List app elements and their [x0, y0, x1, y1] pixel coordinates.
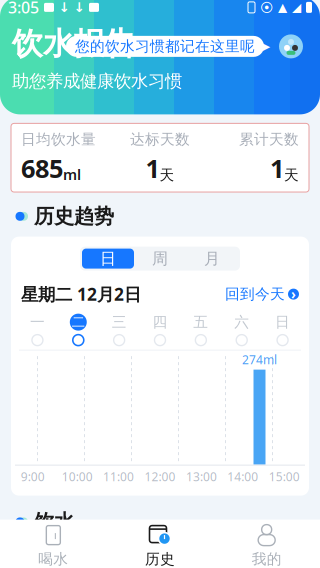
staticText: 三 [112, 313, 127, 331]
staticText: 9:00 [21, 469, 45, 484]
staticText: 六 [234, 313, 249, 331]
staticText: 历史趋势 [34, 204, 114, 229]
staticText: 达标天数 [130, 130, 190, 148]
staticText: 一 [30, 313, 45, 331]
staticText: 五 [193, 313, 208, 331]
staticText: 1 [145, 151, 159, 185]
staticText: 喝水 [38, 550, 68, 568]
staticText: 11:00 [103, 469, 134, 484]
staticText: 12:00 [144, 469, 175, 484]
button[interactable]: 月 [186, 249, 238, 269]
staticText: 日均饮水量 [21, 130, 96, 148]
staticText: 二 [72, 314, 85, 330]
staticText: 您的饮水习惯都记在这里呢 [75, 37, 255, 55]
button[interactable]: 四 [140, 314, 180, 346]
staticText: ↓ [58, 0, 69, 15]
button[interactable]: 喝水 [0, 520, 107, 568]
staticText: 星期二 12月2日 [21, 283, 141, 306]
staticText: 1 [270, 151, 284, 185]
staticText: 累计天数 [239, 130, 299, 148]
button[interactable]: 日 [262, 314, 303, 346]
staticText: ml [63, 165, 81, 184]
staticText: 回到今天 [225, 285, 285, 303]
staticText: 3:05 [8, 0, 39, 18]
staticText: 周 [152, 249, 168, 268]
staticText: ◢ [292, 1, 301, 14]
button[interactable]: 五 [180, 314, 221, 346]
button[interactable]: 我的 [213, 520, 320, 568]
button[interactable]: 三 [99, 314, 140, 346]
staticText: 15:00 [269, 469, 300, 484]
staticText: 天 [284, 166, 299, 184]
staticText: 我的 [252, 550, 282, 568]
staticText: 饮水报告 [12, 25, 136, 63]
staticText: 10:00 [62, 469, 93, 484]
staticText: 月 [204, 249, 220, 268]
button[interactable]: 二 [58, 314, 99, 346]
staticText: 日 [100, 249, 116, 268]
staticText: ↓ [73, 0, 84, 15]
button[interactable]: 日 [82, 249, 134, 269]
button[interactable]: 回到今天 [225, 285, 299, 303]
staticText: 685 [21, 151, 63, 185]
staticText: ⦿ [260, 1, 273, 14]
staticText: › [291, 285, 296, 303]
staticText: 14:00 [227, 469, 258, 484]
staticText: 日 [275, 313, 290, 331]
staticText: 天 [159, 166, 174, 184]
staticText: 13:00 [186, 469, 217, 484]
staticText: 助您养成健康饮水习惯 [12, 71, 182, 92]
button[interactable]: 周 [134, 249, 186, 269]
staticText: 饮水 [34, 510, 74, 534]
staticText: ▲ [278, 1, 287, 14]
button[interactable]: 历史 [107, 520, 213, 568]
staticText: 四 [152, 313, 167, 331]
button[interactable]: 六 [221, 314, 262, 346]
staticText: ▶ [262, 40, 270, 52]
staticText: 历史 [145, 550, 175, 568]
button[interactable]: 一 [17, 314, 58, 346]
staticText: 274ml [242, 352, 277, 368]
